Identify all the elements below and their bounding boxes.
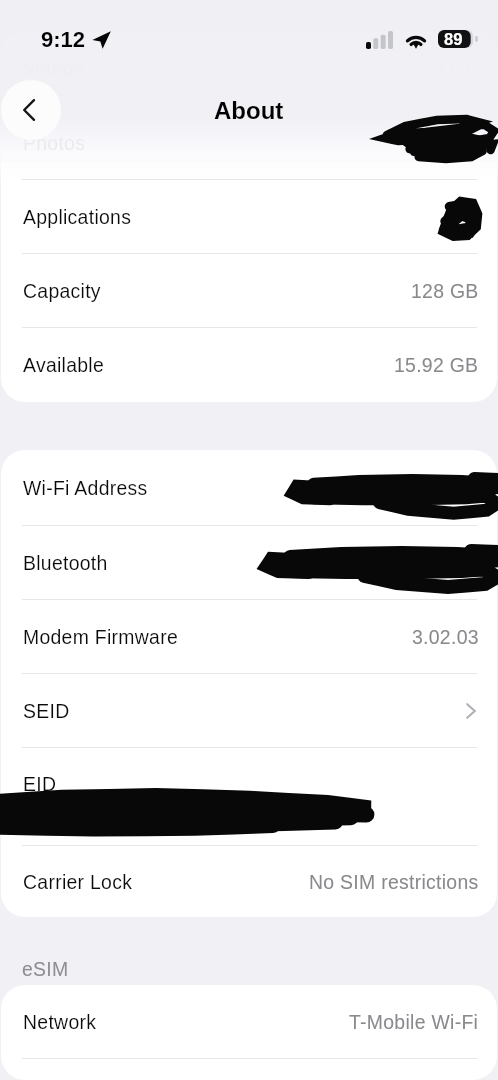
staticText: Modem Firmware bbox=[23, 626, 179, 648]
staticText: Carrier Lock bbox=[23, 871, 133, 893]
staticText: Wi-Fi Address bbox=[23, 477, 148, 499]
button[interactable]: Videos bbox=[1, 32, 497, 106]
staticText: 15.92 GB bbox=[394, 354, 479, 376]
staticText: Applications bbox=[23, 206, 132, 228]
staticText: 3.02.03 bbox=[412, 626, 479, 648]
button[interactable]: Applications bbox=[1, 180, 497, 254]
button[interactable]: Back bbox=[1, 80, 61, 140]
button[interactable]: Carrier Lock bbox=[1, 846, 497, 917]
staticText: 89 bbox=[444, 30, 463, 48]
staticText: About bbox=[214, 97, 284, 124]
button[interactable]: Available bbox=[1, 328, 497, 402]
staticText: Photos bbox=[23, 132, 86, 154]
staticText: 128 GB bbox=[411, 280, 479, 302]
button[interactable]: EID bbox=[1, 748, 497, 846]
staticText: No SIM restrictions bbox=[309, 871, 479, 893]
staticText: Available bbox=[23, 354, 105, 376]
staticText: Network bbox=[23, 1011, 97, 1033]
staticText: Bluetooth bbox=[23, 552, 108, 574]
button[interactable]: Network bbox=[1, 985, 497, 1059]
button[interactable]: Photos bbox=[1, 106, 497, 180]
staticText: EID bbox=[23, 773, 57, 795]
staticText: T-Mobile Wi-Fi bbox=[349, 1011, 479, 1033]
button[interactable]: Wi-Fi Address bbox=[1, 450, 497, 526]
staticText: eSIM bbox=[22, 958, 69, 980]
staticText: Capacity bbox=[23, 280, 101, 302]
button[interactable]: SEID bbox=[1, 674, 497, 748]
button[interactable]: Capacity bbox=[1, 254, 497, 328]
staticText: 9:12 bbox=[41, 27, 86, 52]
button[interactable]: Bluetooth bbox=[1, 526, 497, 600]
staticText: SEID bbox=[23, 700, 70, 722]
button[interactable]: Modem Firmware bbox=[1, 600, 497, 674]
